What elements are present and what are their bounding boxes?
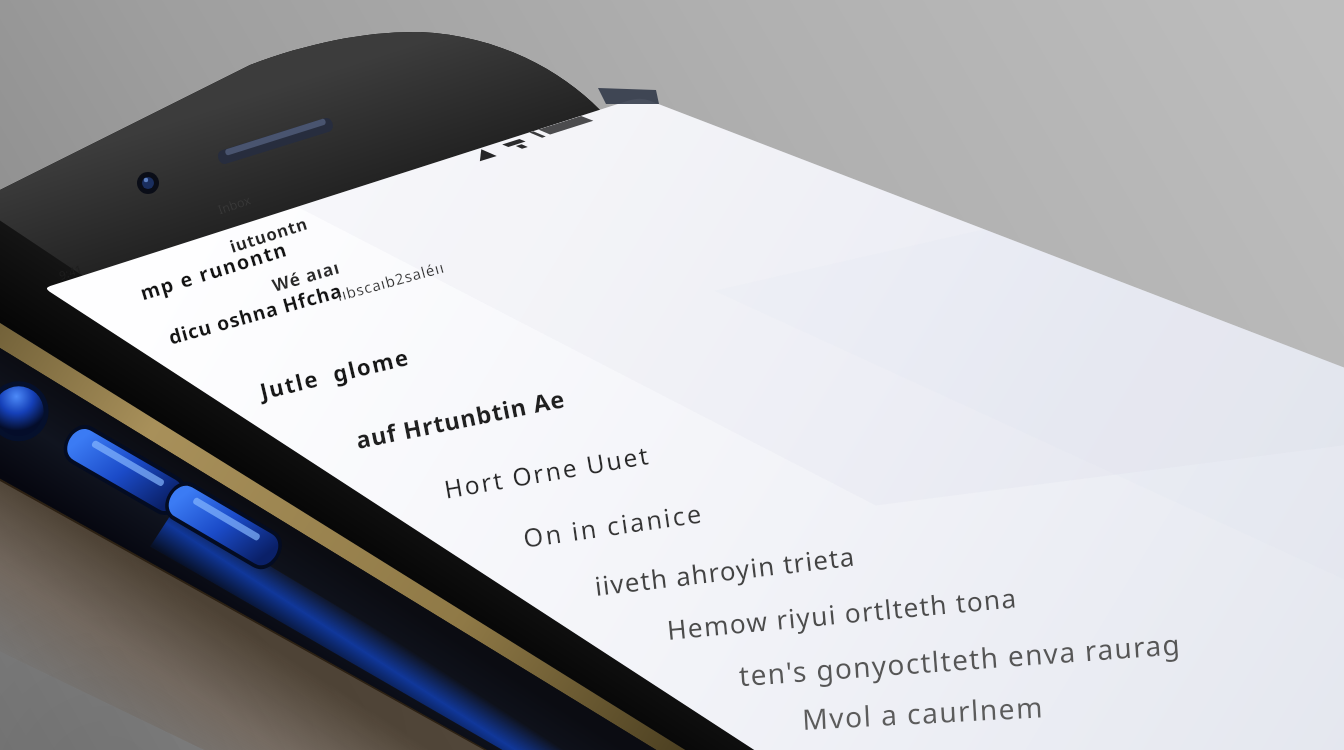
staticText: auf Hrtunbtin Ae [353,382,569,455]
button[interactable]: Wé aıaı [269,255,342,297]
staticText: Hort Orne Uuet [442,437,652,506]
staticText: dicu oshna Hfcha [165,276,346,350]
button[interactable]: Jutle glome [257,341,413,406]
staticText: iiveth ahroyin trieta [593,537,858,603]
button[interactable]: ten's gonyoctlteth enva raurag [738,625,1184,696]
button[interactable]: Hort Orne Uuet [442,437,652,506]
staticText: iutuontn [227,212,311,258]
staticText: mp e runontn [137,235,291,305]
button[interactable]: ııbscaıb2saléıı [335,256,447,306]
button[interactable]: iutuontn [227,212,311,258]
staticText: Hemow riyui ortlteth tona [665,580,1019,649]
button[interactable]: 9:41 [57,261,84,283]
staticText: Inbox [215,191,253,218]
staticText: Jutle glome [257,341,413,406]
button[interactable]: Mvol a caurlnem [801,688,1046,738]
staticText: ııbscaıb2saléıı [335,256,447,306]
staticText: Mvol a caurlnem [801,688,1046,738]
button[interactable]: On in cianice [521,495,706,554]
staticText: ten's gonyoctlteth enva raurag [738,625,1184,696]
button[interactable]: Hemow riyui ortlteth tona [665,580,1019,649]
button[interactable]: iiveth ahroyin trieta [593,537,858,603]
button[interactable]: dicu oshna Hfcha [165,276,346,350]
button[interactable]: mp e runontn [137,235,291,305]
button[interactable]: Inbox [215,191,253,218]
button[interactable]: Smartphone showing a list screen [0,0,1344,750]
staticText: 9:41 [57,261,84,283]
staticText: On in cianice [521,495,706,554]
staticText: Wé aıaı [269,255,342,297]
button[interactable]: auf Hrtunbtin Ae [353,382,569,455]
